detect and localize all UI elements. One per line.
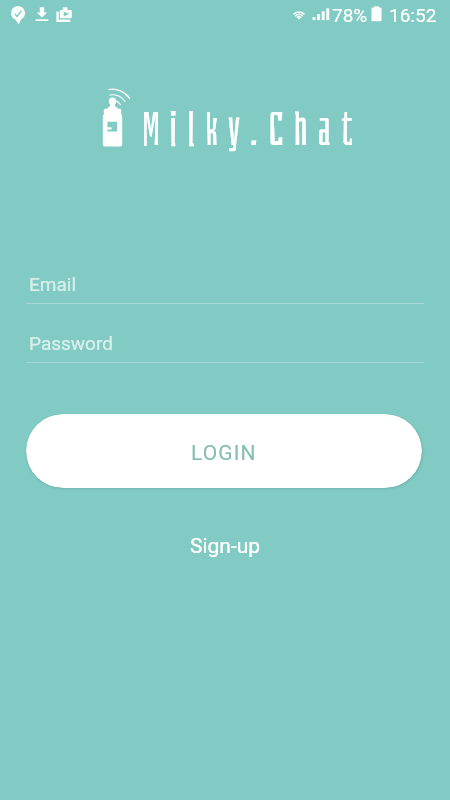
- staticText: Email: [29, 273, 77, 295]
- staticText: LOGIN: [191, 441, 257, 466]
- staticText: Password: [29, 332, 113, 354]
- button[interactable]: Password: [26, 332, 424, 376]
- staticText: 16:52: [389, 4, 437, 26]
- button[interactable]: LOGIN: [26, 414, 422, 488]
- staticText: Milky.Chat: [143, 100, 363, 156]
- button[interactable]: Sign-up: [178, 528, 273, 565]
- staticText: Sign-up: [190, 534, 261, 559]
- staticText: 78%: [332, 4, 368, 26]
- button[interactable]: Email: [26, 273, 424, 317]
